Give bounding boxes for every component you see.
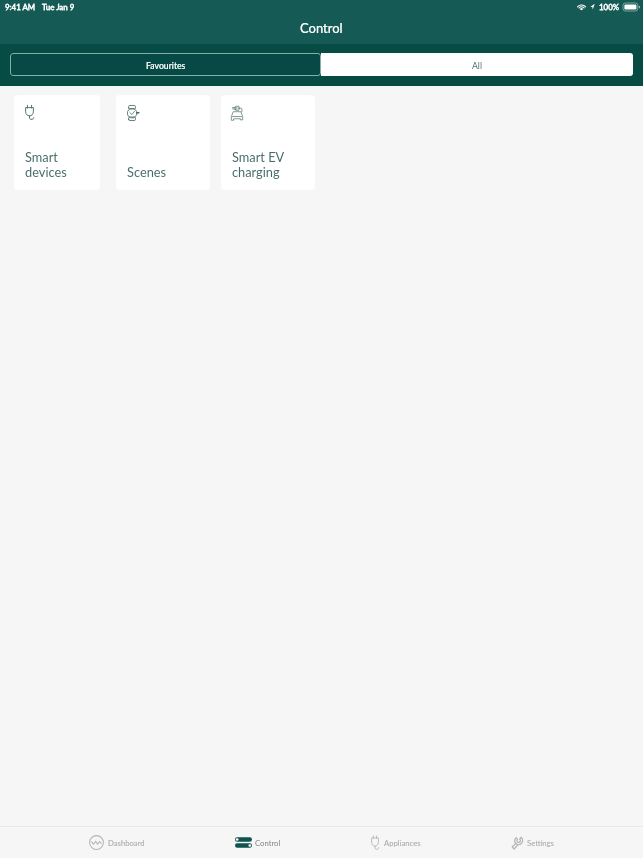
- button[interactable]: Scenes: [116, 95, 210, 190]
- button[interactable]: Control: [235, 827, 281, 858]
- staticText: Smart devices: [25, 149, 67, 179]
- other: Smart devices: [25, 105, 34, 120]
- button[interactable]: Dashboard: [89, 827, 145, 858]
- staticText: 9:41 AM: [5, 2, 36, 11]
- button[interactable]: Smart devices: [14, 95, 100, 190]
- staticText: Appliances: [384, 838, 421, 847]
- staticText: Smart EV charging: [232, 149, 285, 179]
- staticText: Control: [255, 838, 281, 847]
- button[interactable]: Smart EV charging: [221, 95, 315, 190]
- other: Scenes: [127, 105, 139, 121]
- staticText: Favourites: [146, 60, 186, 70]
- staticText: 100%: [599, 2, 620, 11]
- button[interactable]: Appliances: [371, 827, 421, 858]
- button[interactable]: All: [321, 53, 633, 76]
- staticText: Settings: [527, 838, 554, 847]
- staticText: Control: [300, 20, 343, 36]
- button[interactable]: Favourites: [10, 53, 321, 76]
- staticText: Tue Jan 9: [42, 2, 75, 11]
- staticText: All: [472, 60, 482, 70]
- other: Smart EV charging: [231, 105, 243, 121]
- button[interactable]: Settings: [511, 827, 554, 858]
- staticText: Scenes: [127, 164, 167, 179]
- staticText: Dashboard: [108, 838, 145, 847]
